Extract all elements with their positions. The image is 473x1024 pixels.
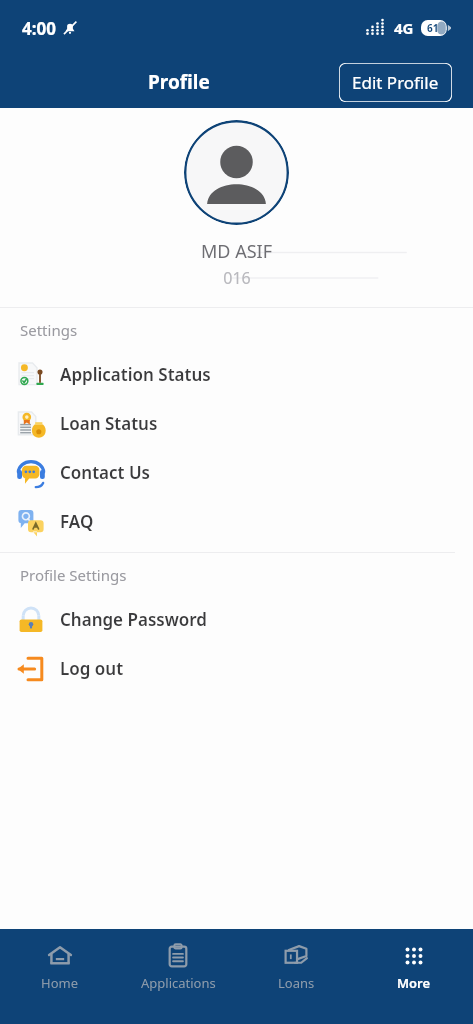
staticText: Loans [278, 974, 315, 992]
staticText: 61 [427, 21, 439, 35]
button[interactable]: Loan Status [0, 399, 473, 448]
staticText: 016 [223, 267, 251, 289]
staticText: Home [41, 974, 78, 992]
button[interactable]: Application Status [0, 350, 473, 399]
staticText: 4G [394, 18, 414, 38]
staticText: FAQ [60, 510, 94, 533]
button[interactable]: Log out [0, 644, 473, 693]
button[interactable]: Applications [119, 939, 237, 1024]
button[interactable]: FAQ [0, 497, 473, 546]
staticText: Change Password [60, 608, 207, 631]
staticText: Profile [148, 69, 210, 95]
staticText: Applications [141, 974, 216, 992]
staticText: Edit Profile [352, 71, 439, 94]
staticText: Contact Us [60, 461, 150, 484]
staticText: Settings [20, 320, 78, 340]
staticText: Profile Settings [20, 565, 127, 585]
button[interactable]: Loans [237, 939, 355, 1024]
button[interactable]: Change Password [0, 595, 473, 644]
staticText: More [397, 974, 431, 992]
button[interactable]: Contact Us [0, 448, 473, 497]
staticText: Application Status [60, 363, 211, 386]
staticText: Log out [60, 657, 124, 680]
button[interactable]: Home [0, 939, 119, 1024]
staticText: Loan Status [60, 412, 158, 435]
staticText: MD ASIF [201, 239, 272, 264]
button[interactable]: More [355, 939, 473, 1024]
staticText: 4:00 [22, 17, 56, 40]
button[interactable]: Edit Profile [338, 62, 453, 103]
